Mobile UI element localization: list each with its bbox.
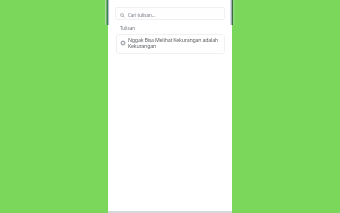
other: Search [120,13,125,18]
staticText: Cari tulisan... [128,12,156,18]
button[interactable]: Search [115,7,225,20]
staticText: Nggak Bisa Melihat Kekurangan adalah Kek… [128,36,225,50]
button[interactable]: Nggak Bisa Melihat Kekurangan adalah Kek… [116,34,225,54]
staticText: Tulisan [120,25,136,31]
